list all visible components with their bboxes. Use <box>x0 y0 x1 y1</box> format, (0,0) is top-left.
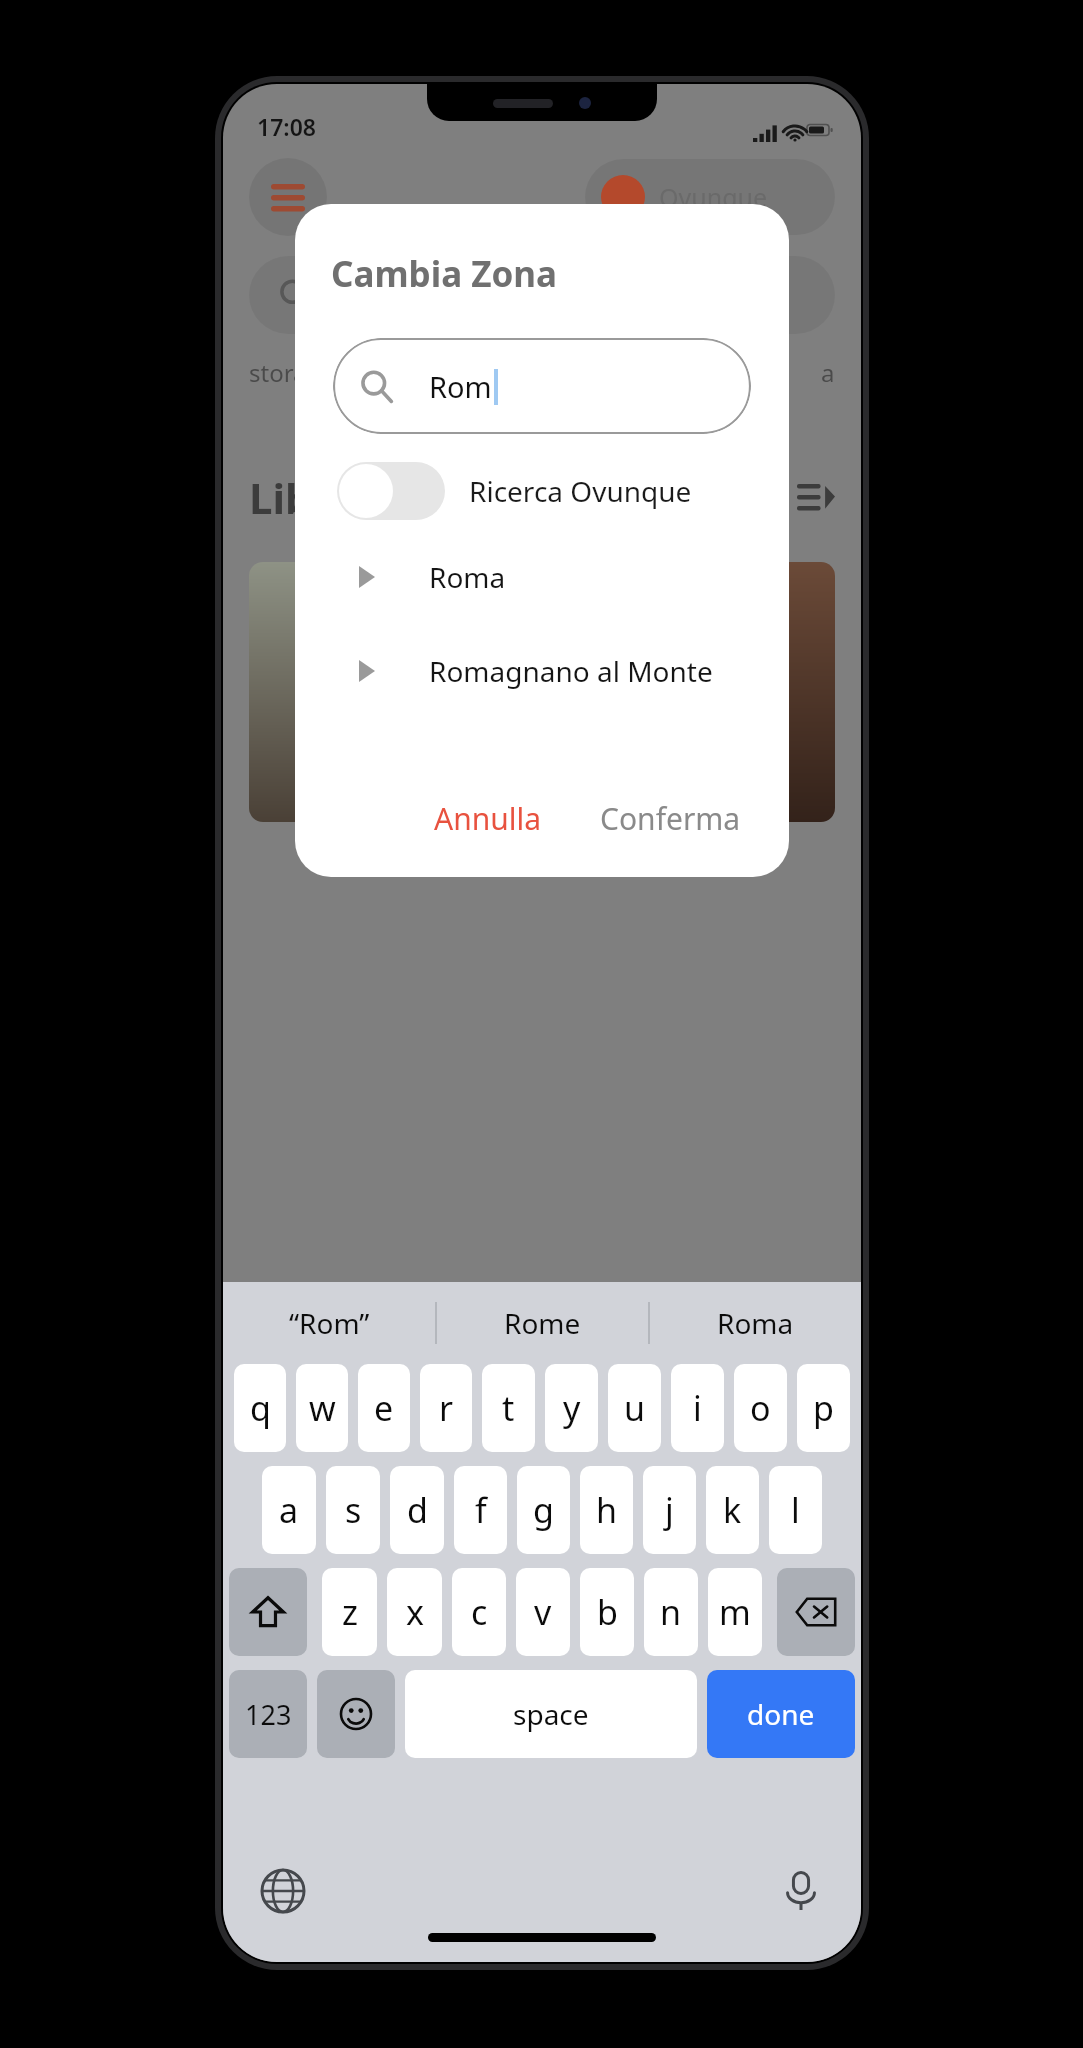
staticText: m <box>719 1589 751 1635</box>
button[interactable]: p <box>797 1364 850 1452</box>
staticText: Cambia Zona <box>331 250 558 298</box>
staticText: v <box>534 1589 552 1635</box>
button[interactable]: y <box>545 1364 598 1452</box>
staticText: h <box>596 1487 618 1533</box>
staticText: q <box>250 1385 271 1431</box>
button[interactable]: i <box>671 1364 724 1452</box>
staticText: stora <box>249 356 307 389</box>
button[interactable]: Rom <box>333 338 751 434</box>
staticText: r <box>439 1385 454 1431</box>
button[interactable]: r <box>420 1364 472 1452</box>
staticText: j <box>665 1487 674 1533</box>
button[interactable]: “Rom” <box>223 1282 435 1364</box>
button[interactable]: Romagnano al Monte <box>295 652 789 690</box>
button[interactable]: Emoji <box>317 1670 395 1758</box>
staticText: a <box>279 1487 299 1533</box>
button[interactable]: w <box>296 1364 348 1452</box>
button[interactable]: l <box>769 1466 822 1554</box>
staticText: i <box>693 1385 702 1431</box>
button[interactable]: d <box>390 1466 444 1554</box>
staticText: t <box>502 1385 515 1431</box>
button[interactable]: done <box>707 1670 855 1758</box>
button[interactable]: v <box>516 1568 570 1656</box>
staticText: space <box>513 1695 589 1733</box>
staticText: y <box>563 1385 581 1431</box>
button[interactable]: m <box>708 1568 762 1656</box>
button[interactable]: Menu <box>249 158 327 236</box>
staticText: done <box>747 1695 815 1733</box>
staticText: Roma <box>717 1304 794 1342</box>
staticText: 123 <box>245 1696 292 1733</box>
button[interactable]: c <box>452 1568 506 1656</box>
staticText: Ricerca Ovunque <box>469 472 692 510</box>
staticText: g <box>533 1487 554 1533</box>
button[interactable]: n <box>644 1568 698 1656</box>
staticText: Romagnano al Monte <box>429 652 713 690</box>
button[interactable]: Ovunque <box>585 159 835 235</box>
staticText: Roma <box>429 558 506 596</box>
staticText: e <box>374 1385 394 1431</box>
button[interactable]: t <box>482 1364 535 1452</box>
button[interactable]: h <box>580 1466 633 1554</box>
staticText: s <box>345 1487 362 1533</box>
button[interactable]: j <box>643 1466 696 1554</box>
button[interactable]: x <box>387 1568 442 1656</box>
staticText: w <box>309 1385 336 1431</box>
staticText: f <box>475 1487 487 1533</box>
staticText: p <box>813 1385 834 1431</box>
staticText: Conferma <box>600 798 741 839</box>
staticText: k <box>723 1487 742 1533</box>
button[interactable]: space <box>405 1670 697 1758</box>
button[interactable]: e <box>358 1364 410 1452</box>
button[interactable]: Ricerca Ovunque <box>337 462 692 520</box>
button[interactable]: Shift <box>229 1568 307 1656</box>
staticText: Rome <box>504 1304 581 1342</box>
staticText: u <box>624 1385 646 1431</box>
button[interactable]: a <box>262 1466 316 1554</box>
button[interactable]: s <box>326 1466 380 1554</box>
button[interactable]: Rome <box>437 1282 648 1364</box>
staticText: Lib <box>249 469 312 526</box>
staticText: “Rom” <box>289 1304 370 1342</box>
staticText: b <box>597 1589 618 1635</box>
button[interactable]: Roma <box>650 1282 861 1364</box>
button[interactable]: Conferma <box>586 790 755 847</box>
staticText: 17:08 <box>257 111 316 142</box>
button[interactable]: Annulla <box>420 790 556 847</box>
staticText: n <box>660 1589 682 1635</box>
staticText: l <box>791 1487 800 1533</box>
button[interactable]: b <box>580 1568 634 1656</box>
button[interactable]: q <box>234 1364 286 1452</box>
button[interactable]: u <box>608 1364 661 1452</box>
button[interactable]: g <box>517 1466 570 1554</box>
staticText: Rom <box>429 367 492 406</box>
staticText: x <box>406 1589 424 1635</box>
button[interactable]: k <box>706 1466 759 1554</box>
staticText: c <box>471 1589 488 1635</box>
button[interactable]: f <box>454 1466 507 1554</box>
staticText: d <box>407 1487 428 1533</box>
button[interactable]: Change language <box>257 1865 309 1917</box>
button[interactable]: o <box>734 1364 787 1452</box>
button[interactable]: 123 <box>229 1670 307 1758</box>
staticText: o <box>750 1385 771 1431</box>
staticText: Ovunque <box>659 180 768 214</box>
staticText: a <box>821 356 835 389</box>
button[interactable] <box>249 256 835 334</box>
button[interactable]: Backspace <box>777 1568 855 1656</box>
staticText: Annulla <box>434 798 542 839</box>
button[interactable]: Dictation <box>775 1865 827 1917</box>
button[interactable]: z <box>322 1568 377 1656</box>
staticText: z <box>342 1589 358 1635</box>
button[interactable]: Roma <box>295 558 789 596</box>
